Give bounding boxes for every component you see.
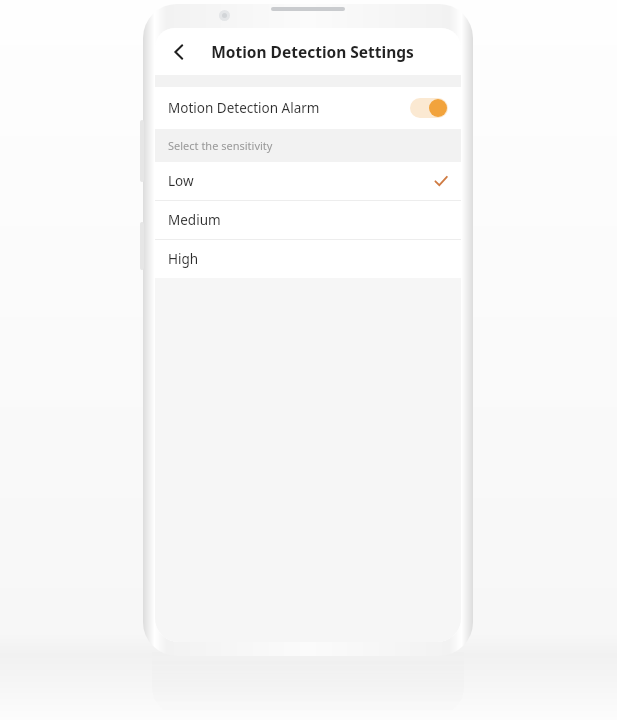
staticText: Medium [168, 211, 221, 229]
button[interactable]: Low [155, 162, 461, 200]
staticText: Motion Detection Alarm [168, 99, 320, 117]
staticText: Low [168, 172, 194, 190]
staticText: Select the sensitivity [168, 138, 273, 153]
button[interactable]: Back [161, 34, 197, 70]
button[interactable]: Medium [155, 201, 461, 239]
button[interactable]: Motion Detection Alarm [155, 87, 461, 129]
button[interactable]: High [155, 240, 461, 278]
staticText: Motion Detection Settings [211, 41, 414, 62]
staticText: High [168, 250, 199, 268]
